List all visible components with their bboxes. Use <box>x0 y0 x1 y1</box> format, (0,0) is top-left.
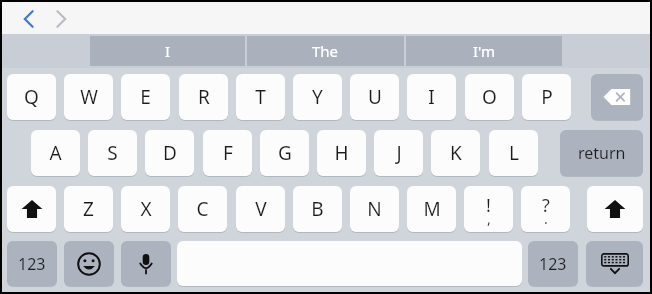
staticText: B <box>311 196 324 222</box>
staticText: Z <box>83 196 94 222</box>
button[interactable]: Forward <box>46 6 76 32</box>
staticText: I <box>428 84 435 110</box>
button[interactable]: E <box>121 74 170 120</box>
button[interactable]: J <box>374 130 423 176</box>
button[interactable]: Back <box>14 6 44 32</box>
button[interactable]: L <box>489 130 538 176</box>
button[interactable]: K <box>431 130 480 176</box>
staticText: return <box>578 142 626 164</box>
button[interactable]: The <box>247 36 404 66</box>
button[interactable]: H <box>317 130 366 176</box>
button[interactable]: Z <box>64 186 113 232</box>
staticText: U <box>368 84 382 110</box>
button[interactable]: F <box>203 130 252 176</box>
staticText: H <box>334 140 349 166</box>
button[interactable]: S <box>88 130 137 176</box>
button[interactable]: ! <box>464 186 513 232</box>
button[interactable]: R <box>179 74 228 120</box>
staticText: Q <box>24 84 39 110</box>
staticText: Y <box>312 84 323 110</box>
button[interactable]: Shift <box>7 186 56 232</box>
staticText: The <box>312 41 339 61</box>
staticText: ! <box>486 193 491 218</box>
button[interactable]: 123 <box>528 241 578 286</box>
staticText: ? <box>542 193 550 218</box>
button[interactable]: M <box>407 186 456 232</box>
button[interactable]: I <box>407 74 456 120</box>
button[interactable]: ? <box>521 186 570 232</box>
button[interactable]: D <box>145 130 194 176</box>
staticText: W <box>80 84 98 110</box>
staticText: , <box>487 209 491 228</box>
button[interactable]: I <box>90 36 245 66</box>
button[interactable]: A <box>31 130 80 176</box>
staticText: I'm <box>473 41 496 61</box>
button[interactable]: Hide keyboard <box>586 241 643 286</box>
staticText: 123 <box>539 253 567 275</box>
button[interactable]: B <box>293 186 342 232</box>
staticText: 123 <box>18 253 46 275</box>
staticText: P <box>541 84 553 110</box>
staticText: N <box>367 196 382 222</box>
staticText: D <box>163 140 177 166</box>
staticText: J <box>396 140 402 166</box>
staticText: . <box>544 209 548 228</box>
staticText: F <box>223 140 233 166</box>
button[interactable]: Backspace <box>591 74 643 120</box>
staticText: K <box>450 140 462 166</box>
button[interactable]: W <box>64 74 113 120</box>
button[interactable]: 123 <box>7 241 57 286</box>
staticText: E <box>140 84 151 110</box>
button[interactable]: V <box>236 186 285 232</box>
button[interactable]: Q <box>7 74 56 120</box>
button[interactable]: Emoji <box>64 241 114 286</box>
staticText: X <box>140 196 152 222</box>
button[interactable]: N <box>350 186 399 232</box>
staticText: S <box>107 140 118 166</box>
staticText: T <box>255 84 266 110</box>
staticText: V <box>255 196 267 222</box>
button[interactable]: X <box>121 186 170 232</box>
button[interactable]: U <box>350 74 399 120</box>
staticText: C <box>196 196 209 222</box>
staticText: I <box>165 41 171 61</box>
button[interactable]: P <box>522 74 571 120</box>
staticText: R <box>198 84 210 110</box>
button[interactable]: I'm <box>406 36 562 66</box>
button[interactable]: Shift <box>587 186 643 232</box>
button[interactable]: G <box>260 130 309 176</box>
staticText: A <box>49 140 62 166</box>
button[interactable]: T <box>236 74 285 120</box>
staticText: G <box>278 140 292 166</box>
staticText: M <box>423 196 441 222</box>
button[interactable]: Y <box>293 74 342 120</box>
staticText: O <box>482 84 497 110</box>
button[interactable]: O <box>465 74 514 120</box>
button[interactable]: Dictate <box>121 241 171 286</box>
staticText: L <box>509 140 519 166</box>
button[interactable]: C <box>178 186 227 232</box>
button[interactable]: return <box>560 130 643 176</box>
